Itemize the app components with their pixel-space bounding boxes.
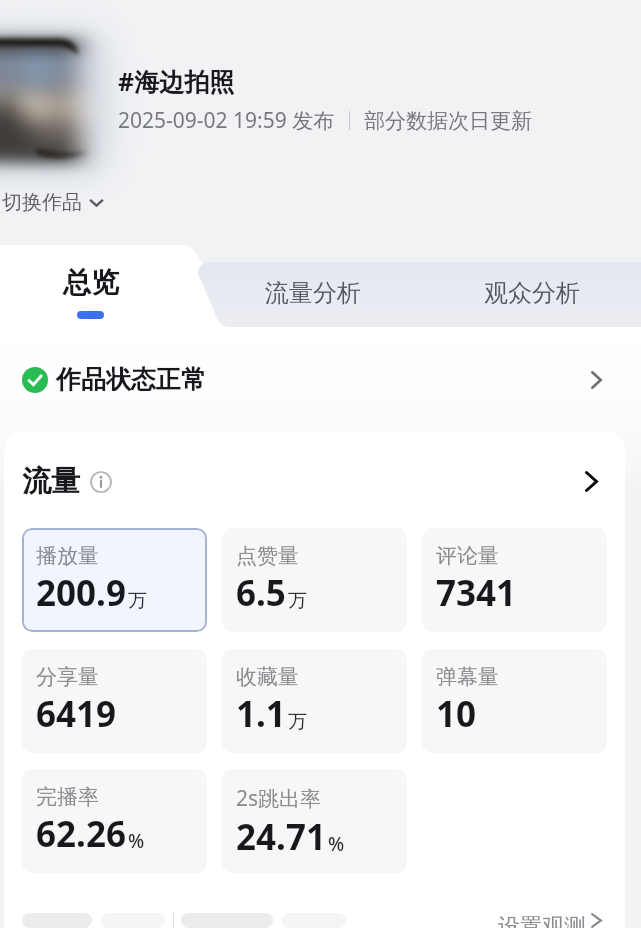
staticText: 完播率 <box>36 784 99 810</box>
staticText: 1.1 <box>236 690 286 738</box>
staticText: 2s跳出率 <box>236 784 322 813</box>
staticText: 观众分析 <box>484 278 580 308</box>
staticText: 6419 <box>36 690 117 738</box>
button[interactable]: 新增 <box>22 913 92 928</box>
staticText: 24.71 <box>236 813 326 861</box>
staticText: 点赞量 <box>236 543 299 569</box>
button[interactable]: 总览 <box>0 245 181 327</box>
button[interactable]: 2s跳出率 <box>222 769 407 873</box>
staticText: 切换作品 <box>2 190 82 215</box>
staticText: 流量 <box>22 463 80 500</box>
button[interactable]: 作品状态正常 <box>0 327 641 432</box>
button[interactable]: 播放量 <box>22 528 207 632</box>
staticText: 万 <box>288 710 307 734</box>
button[interactable]: 每小时 <box>181 913 273 928</box>
staticText: 作品状态正常 <box>56 364 206 395</box>
staticText: 2025-09-02 19:59 发布 <box>118 106 335 135</box>
button[interactable]: 切换作品 <box>0 186 109 219</box>
staticText: 部分数据次日更新 <box>364 108 532 134</box>
button[interactable]: 观众分析 <box>423 245 641 327</box>
staticText: 万 <box>128 589 147 613</box>
staticText: 评论量 <box>436 543 499 569</box>
button[interactable]: 点赞量 <box>222 528 407 632</box>
button[interactable]: 评论量 <box>422 528 607 632</box>
staticText: 6.5 <box>236 569 286 617</box>
button[interactable]: 流量分析 <box>202 245 423 327</box>
staticText: #海边拍照 <box>118 64 235 98</box>
staticText: 10 <box>436 690 477 738</box>
staticText: % <box>128 828 145 854</box>
staticText: 流量分析 <box>265 278 361 308</box>
staticText: 分享量 <box>36 664 99 690</box>
button[interactable]: 收藏量 <box>222 649 407 753</box>
staticText: 总览 <box>63 265 119 300</box>
staticText: 7341 <box>436 569 517 617</box>
staticText: 播放量 <box>36 543 99 569</box>
button[interactable]: 分享量 <box>22 649 207 753</box>
staticText: % <box>328 831 345 857</box>
button[interactable]: 设置观测 <box>498 913 607 928</box>
button[interactable]: 弹幕量 <box>422 649 607 753</box>
button[interactable]: 完播率 <box>22 769 207 873</box>
staticText: 弹幕量 <box>436 664 499 690</box>
staticText: 万 <box>288 589 307 613</box>
button[interactable]: 流量 <box>22 463 607 500</box>
staticText: 62.26 <box>36 810 126 858</box>
staticText: 200.9 <box>36 569 126 617</box>
staticText: 收藏量 <box>236 664 299 690</box>
staticText: 设置观测 <box>498 913 586 928</box>
